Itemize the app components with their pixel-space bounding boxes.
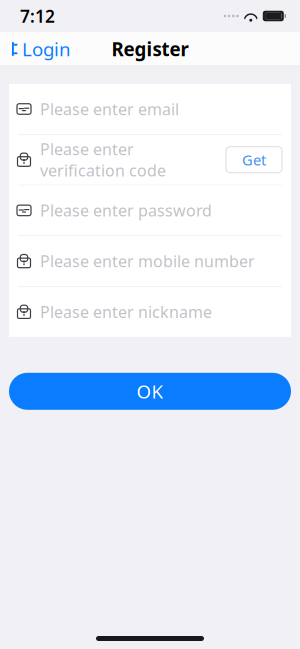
- button[interactable]: Get: [226, 147, 282, 173]
- staticText: Register: [111, 37, 188, 61]
- staticText: 7:12: [20, 4, 55, 27]
- button[interactable]: OK: [9, 373, 291, 410]
- button[interactable]: Login: [0, 32, 77, 66]
- staticText: Please enter password: [40, 200, 212, 221]
- staticText: Please enter email: [40, 98, 179, 120]
- staticText: Login: [22, 37, 71, 61]
- staticText: Get: [242, 150, 266, 169]
- staticText: Please enter nickname: [40, 301, 212, 322]
- staticText: Please enter verification code: [40, 138, 166, 181]
- staticText: OK: [136, 379, 163, 404]
- staticText: Please enter mobile number: [40, 250, 255, 272]
